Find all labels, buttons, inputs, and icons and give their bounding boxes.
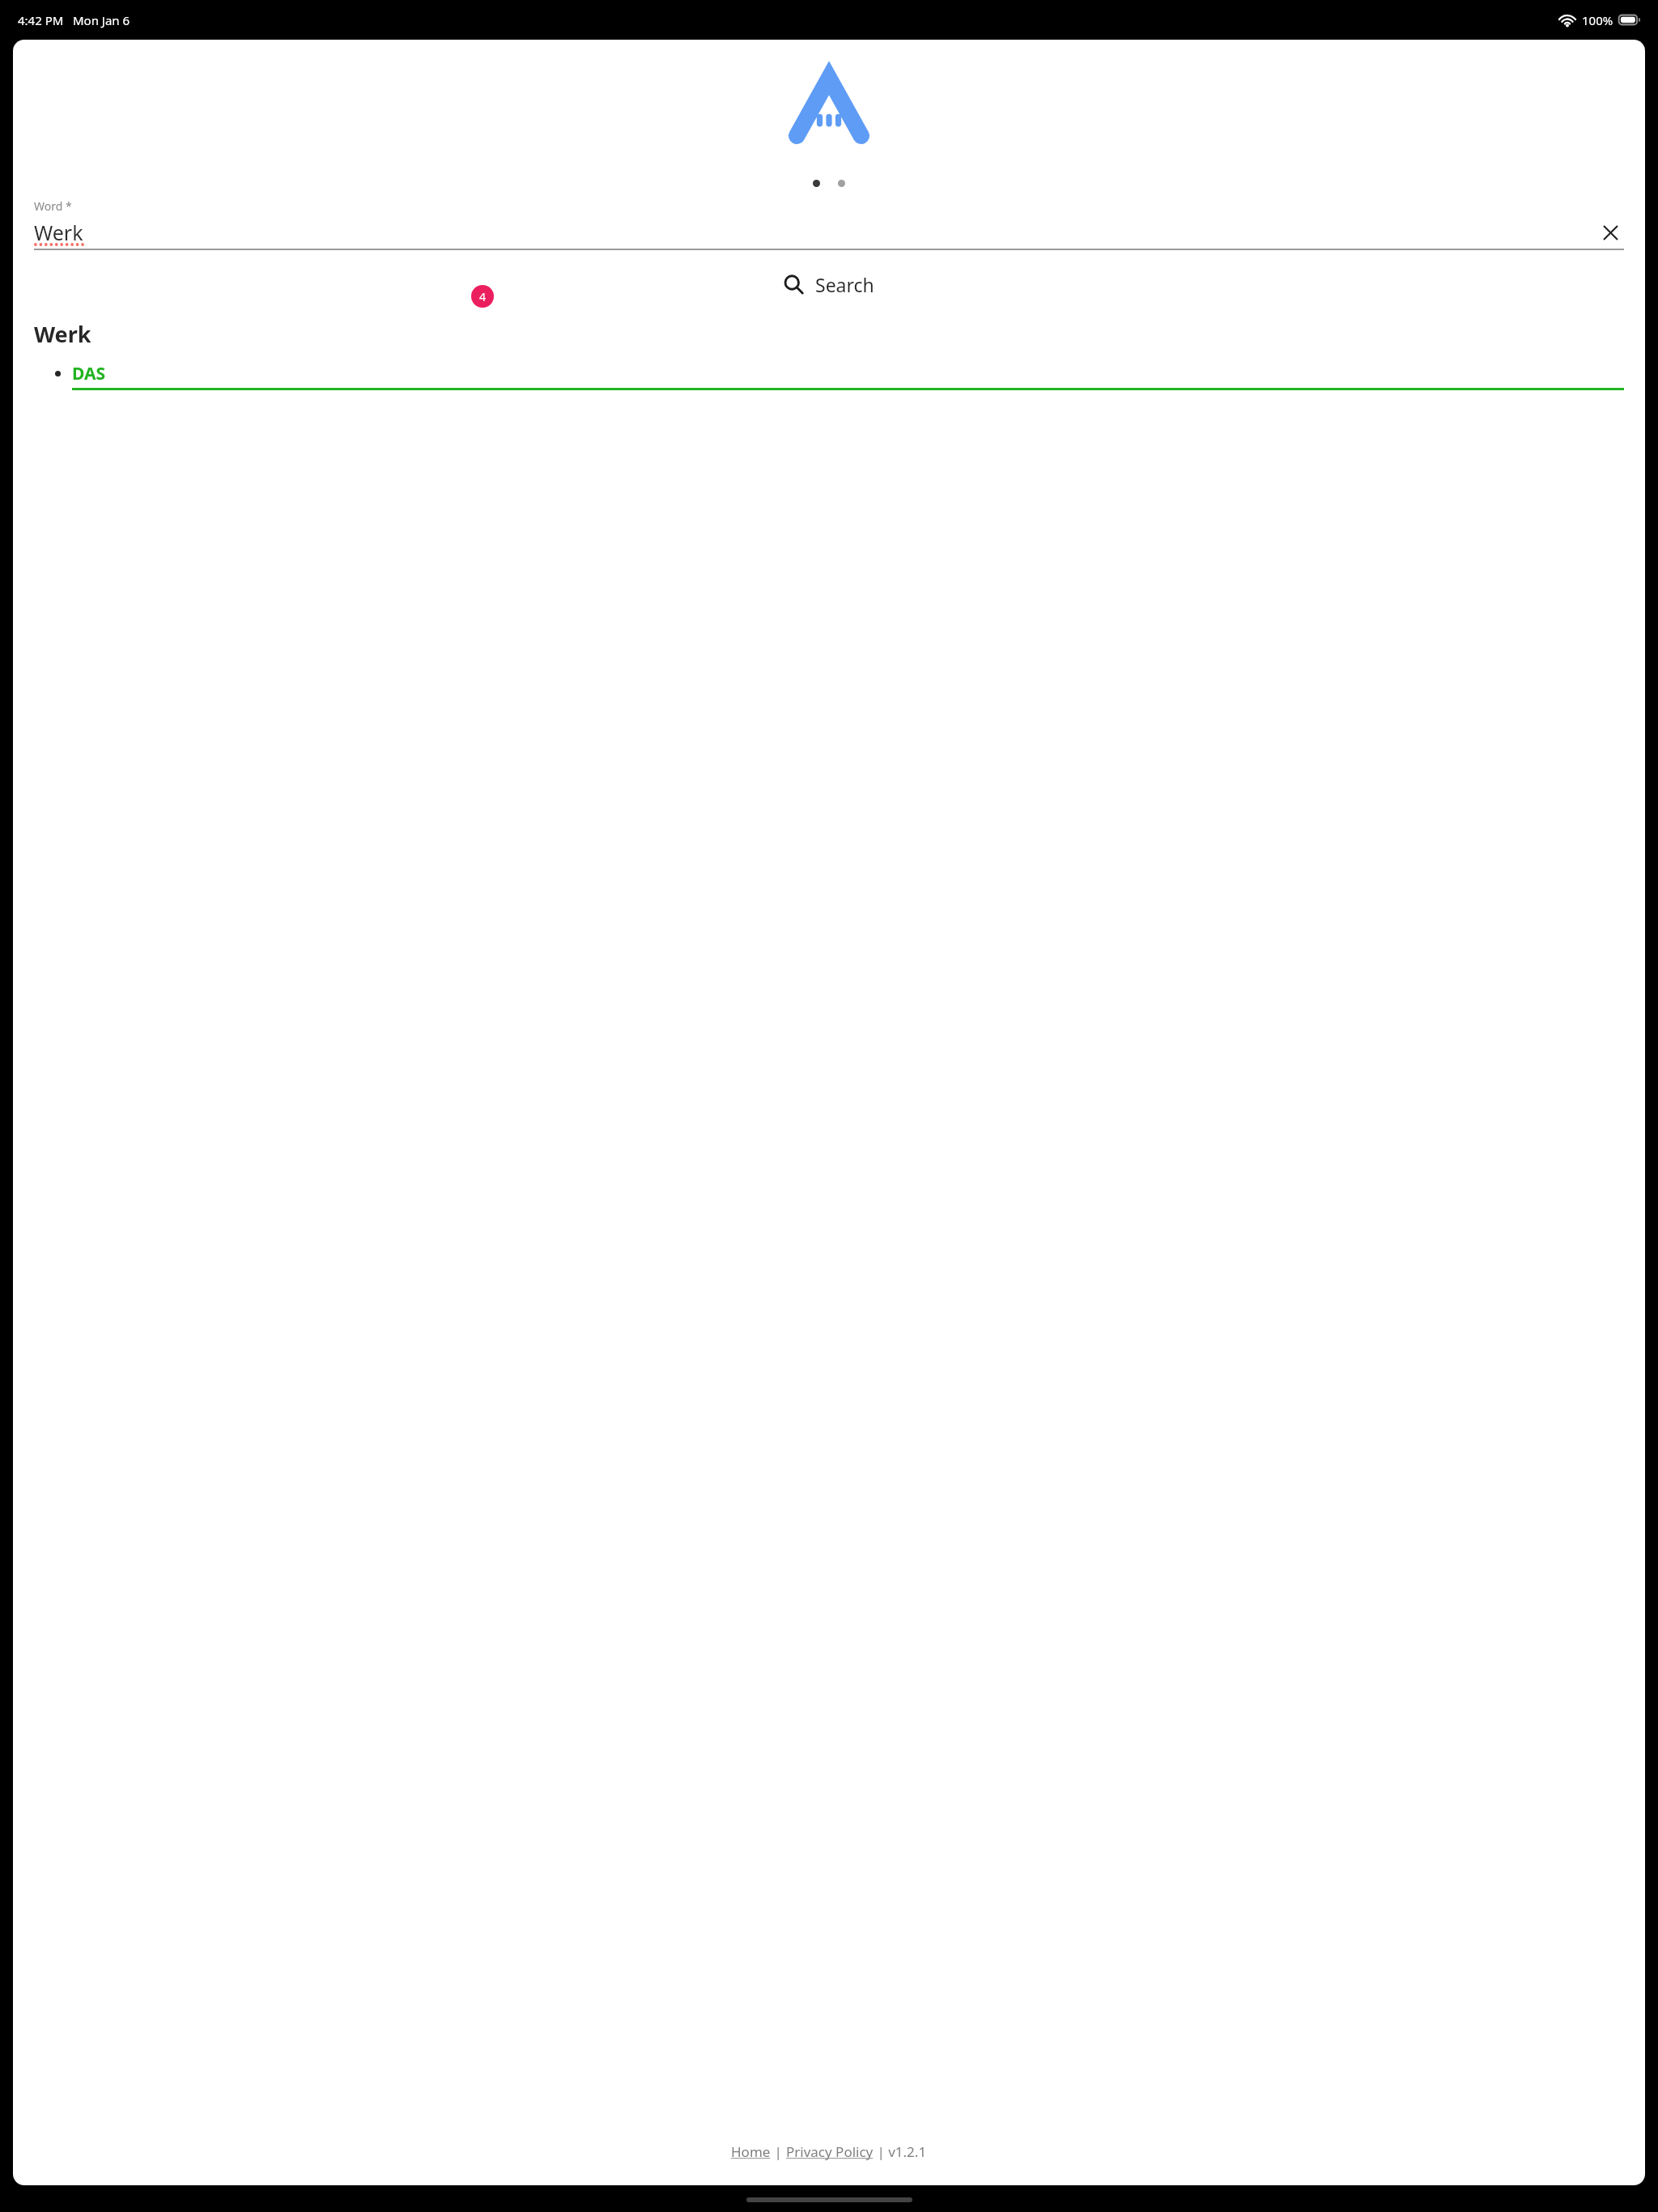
button[interactable]: DAS (34, 362, 1624, 390)
staticText: Mon Jan 6 (73, 12, 130, 28)
button[interactable] (813, 180, 820, 187)
button[interactable] (838, 180, 845, 187)
button[interactable]: Privacy Policy (786, 2142, 874, 2161)
staticText: Word * (34, 198, 72, 214)
staticText: Search (815, 272, 874, 297)
staticText: 4 (479, 289, 487, 304)
staticText: 100% (1582, 12, 1613, 28)
staticText: Home (731, 2142, 771, 2161)
staticText: | v1.2.1 (874, 2142, 927, 2161)
button[interactable]: 4 (471, 285, 494, 308)
button[interactable]: Search (777, 268, 881, 301)
staticText: 4:42 PM (18, 12, 64, 28)
staticText: Privacy Policy (786, 2142, 874, 2161)
staticText: | (771, 2142, 786, 2161)
staticText: Werk (34, 319, 91, 349)
staticText: Werk (34, 219, 83, 246)
staticText: DAS (72, 362, 106, 385)
button[interactable]: Home (731, 2142, 771, 2161)
button[interactable]: Clear text (1596, 219, 1624, 246)
